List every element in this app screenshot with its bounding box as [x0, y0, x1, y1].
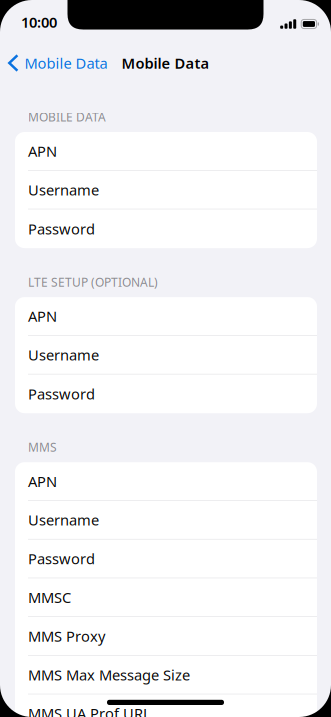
- staticText: APN: [28, 471, 57, 491]
- button[interactable]: Mobile Data: [0, 47, 113, 79]
- button[interactable]: MMSC: [15, 578, 317, 617]
- staticText: Username: [28, 510, 99, 530]
- button[interactable]: MMS Max Message Size: [15, 656, 317, 694]
- button[interactable]: Username: [15, 171, 317, 209]
- staticText: MOBILE DATA: [28, 109, 106, 125]
- button[interactable]: APN: [15, 297, 317, 336]
- staticText: MMS Max Message Size: [28, 665, 190, 684]
- staticText: APN: [28, 306, 57, 326]
- button[interactable]: Username: [15, 501, 317, 540]
- button[interactable]: Password: [15, 374, 317, 413]
- staticText: MMS: [28, 439, 57, 455]
- staticText: Mobile Data: [24, 53, 107, 73]
- staticText: Mobile Data: [121, 53, 209, 73]
- button[interactable]: MMS UA Prof URL: [15, 694, 317, 717]
- button[interactable]: Username: [15, 336, 317, 374]
- staticText: Username: [28, 180, 99, 199]
- staticText: Password: [28, 549, 95, 568]
- staticText: 10:00: [21, 12, 57, 32]
- button[interactable]: MMS Proxy: [15, 617, 317, 656]
- staticText: Username: [28, 345, 99, 365]
- staticText: LTE SETUP (OPTIONAL): [28, 274, 158, 290]
- button[interactable]: Password: [15, 540, 317, 578]
- staticText: MMS UA Prof URL: [28, 704, 151, 717]
- staticText: APN: [28, 141, 57, 161]
- staticText: Password: [28, 219, 95, 238]
- button[interactable]: APN: [15, 132, 317, 171]
- staticText: Password: [28, 384, 95, 404]
- button[interactable]: APN: [15, 462, 317, 501]
- staticText: MMS Proxy: [28, 626, 105, 646]
- staticText: MMSC: [28, 588, 71, 607]
- button[interactable]: Password: [15, 209, 317, 248]
